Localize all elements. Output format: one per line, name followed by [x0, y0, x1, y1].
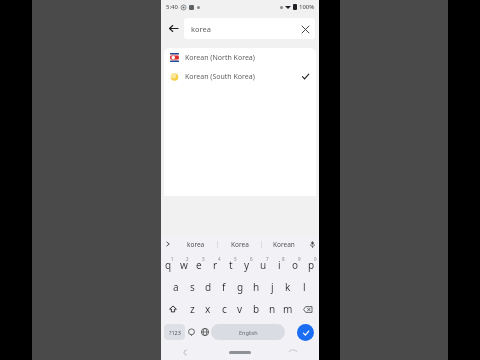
- staticText: r: [213, 258, 218, 272]
- staticText: c: [222, 302, 227, 316]
- button[interactable]: korea: [175, 236, 217, 252]
- staticText: n: [269, 302, 276, 316]
- button[interactable]: i: [271, 254, 287, 276]
- staticText: English: [239, 329, 258, 336]
- staticText: y: [244, 258, 250, 272]
- button[interactable]: j: [264, 276, 280, 298]
- button[interactable]: Done: [297, 324, 314, 341]
- button[interactable]: Voice input: [305, 236, 319, 252]
- button[interactable]: l: [296, 276, 312, 298]
- staticText: w: [180, 258, 188, 272]
- button[interactable]: v: [232, 298, 248, 320]
- button[interactable]: w: [176, 254, 191, 276]
- staticText: h: [253, 280, 260, 294]
- button[interactable]: x: [200, 298, 216, 320]
- button[interactable]: z: [184, 298, 200, 320]
- staticText: korea: [191, 24, 211, 34]
- staticText: korea: [187, 240, 205, 249]
- staticText: t: [229, 258, 233, 272]
- staticText: p: [308, 258, 315, 272]
- staticText: d: [205, 280, 212, 294]
- staticText: Korea: [231, 240, 249, 249]
- staticText: 1: [171, 256, 174, 262]
- staticText: s: [190, 280, 195, 294]
- button[interactable]: ?123: [164, 324, 185, 340]
- staticText: j: [271, 280, 274, 294]
- staticText: 5: [234, 256, 237, 262]
- staticText: 100%: [299, 3, 315, 11]
- button[interactable]: Backspace: [296, 298, 319, 320]
- button[interactable]: m: [280, 298, 296, 320]
- staticText: 6: [250, 256, 253, 262]
- staticText: b: [253, 302, 260, 316]
- button[interactable]: n: [264, 298, 280, 320]
- button[interactable]: k: [280, 276, 296, 298]
- button[interactable]: Korean (North Korea): [164, 48, 316, 67]
- button[interactable]: Korean: [262, 236, 305, 252]
- staticText: x: [205, 302, 211, 316]
- button[interactable]: u: [255, 254, 271, 276]
- button[interactable]: Home: [213, 344, 266, 360]
- button[interactable]: korea: [184, 18, 315, 39]
- staticText: 3: [202, 256, 205, 262]
- button[interactable]: q: [161, 254, 176, 276]
- button[interactable]: s: [184, 276, 200, 298]
- staticText: 5:40: [166, 3, 178, 11]
- button[interactable]: Korean (South Korea): [164, 67, 316, 86]
- staticText: ?123: [169, 329, 181, 336]
- staticText: z: [190, 302, 195, 316]
- staticText: i: [278, 258, 281, 272]
- button[interactable]: o: [287, 254, 303, 276]
- button[interactable]: y: [239, 254, 255, 276]
- staticText: q: [165, 258, 172, 272]
- button[interactable]: Emoji: [185, 324, 198, 340]
- button[interactable]: g: [232, 276, 248, 298]
- button[interactable]: t: [223, 254, 239, 276]
- button[interactable]: English: [211, 324, 285, 340]
- button[interactable]: Recents: [266, 344, 319, 360]
- staticText: o: [292, 258, 299, 272]
- staticText: Korean (South Korea): [185, 72, 255, 82]
- button[interactable]: Clear search: [297, 21, 313, 37]
- staticText: 4: [218, 256, 221, 262]
- staticText: g: [237, 280, 244, 294]
- button[interactable]: f: [216, 276, 232, 298]
- staticText: 2: [186, 256, 189, 262]
- staticText: l: [303, 280, 306, 294]
- button[interactable]: a: [168, 276, 184, 298]
- button[interactable]: h: [248, 276, 264, 298]
- button[interactable]: r: [207, 254, 223, 276]
- staticText: f: [222, 280, 226, 294]
- button[interactable]: Shift: [161, 298, 184, 320]
- button[interactable]: Back: [161, 344, 213, 360]
- staticText: k: [285, 280, 291, 294]
- staticText: 0: [314, 256, 317, 262]
- staticText: a: [173, 280, 179, 294]
- button[interactable]: d: [200, 276, 216, 298]
- staticText: Korean (North Korea): [185, 53, 255, 63]
- button[interactable]: More suggestions: [161, 236, 175, 252]
- button[interactable]: b: [248, 298, 264, 320]
- staticText: u: [260, 258, 267, 272]
- staticText: 9: [298, 256, 301, 262]
- button[interactable]: e: [191, 254, 207, 276]
- button[interactable]: Change language: [198, 324, 211, 340]
- staticText: Korean: [273, 240, 295, 249]
- staticText: 8: [282, 256, 285, 262]
- button[interactable]: p: [303, 254, 319, 276]
- button[interactable]: Back: [165, 20, 181, 36]
- button[interactable]: c: [216, 298, 232, 320]
- staticText: 7: [266, 256, 269, 262]
- button[interactable]: Korea: [218, 236, 261, 252]
- staticText: v: [237, 302, 243, 316]
- staticText: m: [283, 302, 293, 316]
- staticText: e: [196, 258, 202, 272]
